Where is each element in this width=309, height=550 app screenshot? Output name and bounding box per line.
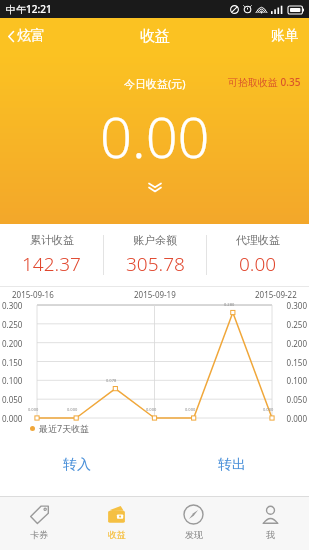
button[interactable]: 代理收益: [207, 227, 309, 283]
staticText: 2015-09-16: [12, 289, 54, 300]
staticText: 0.100: [286, 375, 307, 386]
staticText: 0.050: [2, 394, 23, 405]
staticText: 代理收益: [236, 233, 280, 247]
staticText: 收益: [108, 529, 126, 540]
button[interactable]: 账户余额: [104, 227, 206, 283]
staticText: 卡券: [30, 529, 48, 540]
staticText: 0.000: [185, 407, 196, 412]
button[interactable]: 展开更多: [142, 176, 168, 199]
staticText: 0.078: [106, 378, 117, 383]
button[interactable]: 我: [232, 497, 309, 550]
button[interactable]: 炫富: [0, 23, 55, 49]
staticText: 0.280: [224, 302, 235, 307]
staticText: 0.000: [2, 413, 23, 424]
staticText: 转出: [218, 456, 246, 474]
staticText: 0.000: [146, 407, 157, 412]
staticText: 0.050: [286, 394, 307, 405]
staticText: 账户余额: [133, 233, 177, 247]
staticText: 累计收益: [30, 233, 74, 247]
staticText: 0.00: [239, 251, 277, 277]
staticText: 炫富: [17, 27, 45, 45]
button[interactable]: 可拾取收益 0.35: [228, 54, 309, 89]
button[interactable]: 累计收益: [0, 227, 103, 283]
button[interactable]: 发现: [155, 497, 232, 550]
button[interactable]: 卡券: [0, 497, 78, 550]
staticText: 中午12:21: [6, 2, 52, 16]
staticText: 0.250: [2, 319, 23, 330]
staticText: 142.37: [22, 251, 81, 277]
button[interactable]: 转入: [0, 442, 154, 488]
staticText: 0.000: [28, 407, 39, 412]
staticText: 今日收益(元): [124, 76, 186, 91]
staticText: 发现: [185, 529, 203, 540]
staticText: 0.000: [67, 407, 78, 412]
button[interactable]: 转出: [154, 442, 309, 488]
staticText: 我: [266, 529, 275, 540]
staticText: 0.000: [263, 407, 274, 412]
staticText: 305.78: [126, 251, 185, 277]
staticText: 0.300: [286, 300, 307, 311]
staticText: 0.300: [2, 300, 23, 311]
staticText: 转入: [63, 456, 91, 474]
staticText: 2015-09-22: [255, 289, 297, 300]
staticText: 0.000: [286, 413, 307, 424]
staticText: 0.150: [2, 357, 23, 368]
staticText: 最近7天收益: [39, 422, 90, 434]
staticText: 0.200: [2, 338, 23, 349]
button[interactable]: 收益: [78, 497, 155, 550]
staticText: 0.250: [286, 319, 307, 330]
staticText: 0.150: [286, 357, 307, 368]
staticText: 0.100: [2, 375, 23, 386]
staticText: 2015-09-19: [134, 289, 176, 300]
staticText: 收益: [140, 27, 170, 46]
staticText: 0.00: [100, 98, 210, 174]
staticText: 0.200: [286, 338, 307, 349]
button[interactable]: 账单: [261, 21, 309, 51]
